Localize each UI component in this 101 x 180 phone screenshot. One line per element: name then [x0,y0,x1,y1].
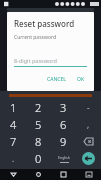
button[interactable]: 3 [51,99,76,116]
staticText: CANCEL [47,76,66,83]
button[interactable]: 2 [26,99,51,116]
button[interactable]: Change language [51,150,76,167]
button[interactable]: Home [26,169,51,180]
staticText: . [12,153,15,164]
button[interactable]: 6 [51,116,76,133]
button[interactable]: Recent apps [51,169,76,180]
button[interactable]: 8 [26,133,51,150]
staticText: 1 [10,100,17,115]
staticText: Current password [14,34,56,41]
button[interactable]: 7 [0,133,26,150]
staticText: 3 [60,100,67,115]
staticText: 5 [35,117,42,132]
button[interactable]: 1 [0,99,26,116]
button[interactable]: . [0,150,26,167]
button[interactable]: CANCEL [45,75,68,84]
staticText: 2 [35,100,42,115]
staticText: 7 [10,134,17,149]
button[interactable]: Switch keyboard [76,169,101,180]
staticText: 4 [10,117,17,132]
button[interactable]: 5 [26,116,51,133]
button[interactable]: Back [0,169,26,180]
staticText: 0 [35,151,42,166]
staticText: Reset password [14,18,75,29]
staticText: - [87,102,90,113]
button[interactable]: - [76,99,101,116]
staticText: 8 [35,134,42,149]
staticText: English [58,155,70,160]
button[interactable]: OK [75,75,87,84]
button[interactable]: 0 [26,150,51,167]
button[interactable]: 9 [51,133,76,150]
staticText: 8-digit password [14,57,57,64]
button[interactable]: Enter [76,150,101,167]
button[interactable]: 4 [0,116,26,133]
button[interactable]: , [76,116,101,133]
staticText: 9 [60,134,67,149]
staticText: OK [77,76,85,83]
staticText: , [87,119,90,130]
staticText: 6 [60,117,67,132]
button[interactable]: Delete [76,133,101,150]
